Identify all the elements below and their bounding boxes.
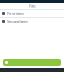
- staticText: Second item: [7, 19, 28, 24]
- staticText: First item: [7, 11, 24, 16]
- button[interactable]: Second item: [0, 18, 64, 25]
- button[interactable]: First item: [0, 10, 64, 17]
- button[interactable]: [3, 59, 61, 66]
- staticText: Title: [28, 3, 35, 9]
